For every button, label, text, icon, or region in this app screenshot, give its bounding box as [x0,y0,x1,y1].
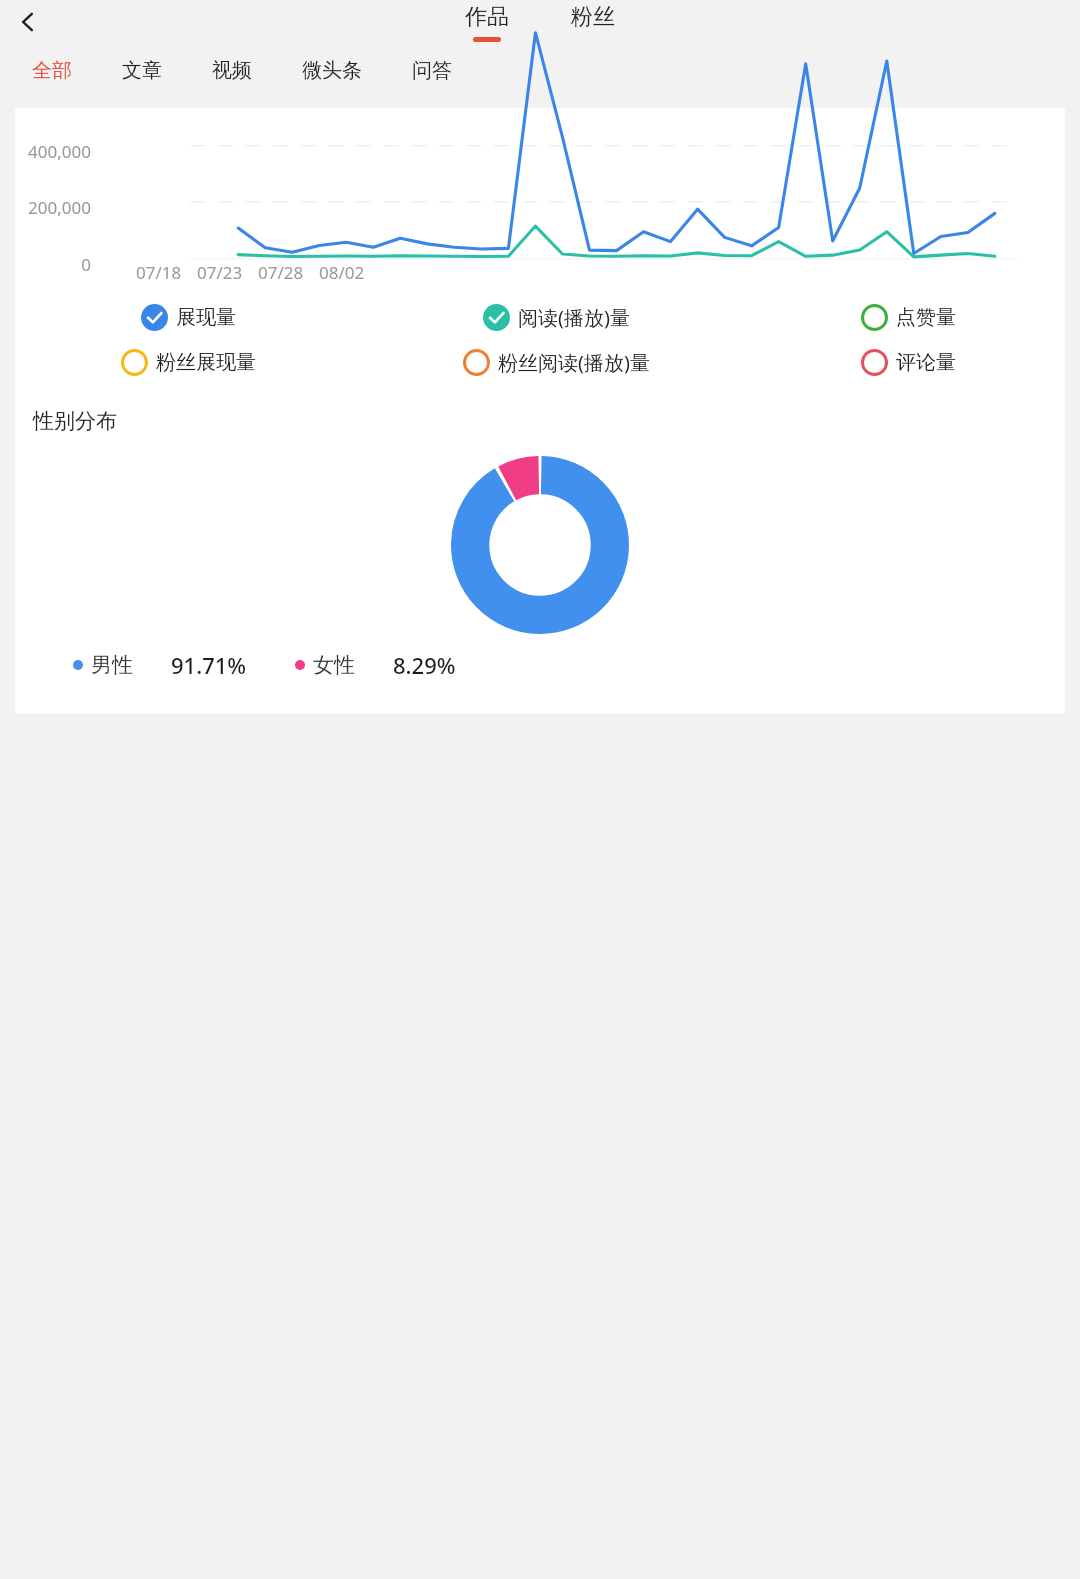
staticText: 展现量 [176,305,236,330]
staticText: 评论量 [896,350,956,375]
staticText: 07/18 [136,261,182,284]
button[interactable]: 全部 [14,52,90,89]
staticText: 粉丝阅读(播放)量 [498,349,650,376]
button[interactable]: 评论量 [761,349,1055,376]
staticText: 文章 [122,58,162,83]
button[interactable]: 作品 [455,1,519,44]
button[interactable]: 文章 [104,52,180,89]
button[interactable]: 微头条 [284,52,380,89]
button[interactable]: Back [8,2,48,42]
button[interactable]: 粉丝 [561,1,625,44]
staticText: 08/02 [319,261,365,284]
button[interactable]: 展现量 [25,304,352,331]
staticText: 全部 [32,58,72,83]
button[interactable]: 问答 [394,52,470,89]
staticText: 阅读(播放)量 [518,304,630,331]
staticText: 女性 [313,652,355,678]
staticText: 性别分布 [33,408,117,434]
staticText: 视频 [212,58,252,83]
button[interactable]: 点赞量 [761,304,1055,331]
staticText: 男性 [91,652,133,678]
button[interactable]: 视频 [194,52,270,89]
staticText: 200,000 [15,196,91,219]
button[interactable]: 男性 [73,650,247,680]
staticText: 粉丝展现量 [156,350,256,375]
staticText: 07/28 [258,261,304,284]
staticText: 问答 [412,58,452,83]
staticText: 粉丝 [571,3,615,31]
button[interactable]: 女性 [295,650,456,680]
staticText: 0 [15,253,91,276]
staticText: 91.71% [171,650,247,680]
staticText: 点赞量 [896,305,956,330]
button[interactable]: 阅读(播放)量 [352,304,761,331]
staticText: 作品 [465,3,509,31]
staticText: 07/23 [197,261,243,284]
staticText: 8.29% [393,650,456,680]
button[interactable]: 粉丝展现量 [25,349,352,376]
staticText: 微头条 [302,58,362,83]
staticText: 400,000 [15,140,91,163]
button[interactable]: 粉丝阅读(播放)量 [352,349,761,376]
